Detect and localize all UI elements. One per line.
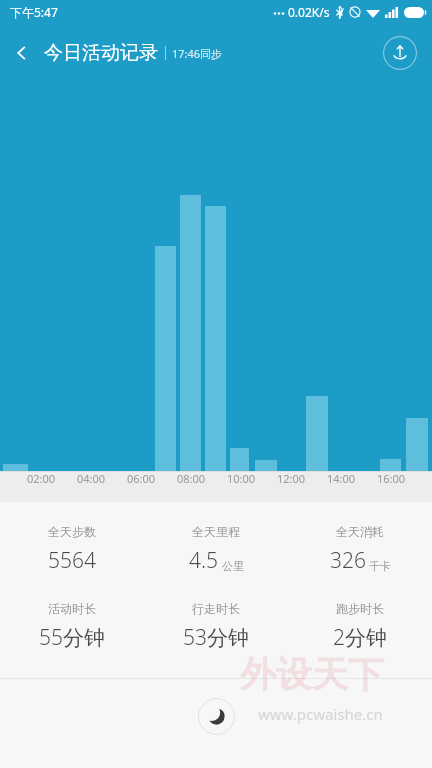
staticText: 16:00 <box>365 471 417 486</box>
staticText: 4.5 <box>189 546 219 575</box>
button[interactable]: 活动时长 <box>0 601 144 652</box>
staticText: 02:00 <box>15 471 67 486</box>
button[interactable]: 跑步时长 <box>288 601 432 652</box>
staticText: 今日活动记录 <box>44 41 158 65</box>
button[interactable]: Share <box>380 33 420 73</box>
staticText: 2分钟 <box>333 623 387 652</box>
button[interactable]: 全天里程 <box>144 524 288 575</box>
staticText: 12:00 <box>265 471 317 486</box>
staticText: 08:00 <box>165 471 217 486</box>
staticText: 55分钟 <box>39 623 105 652</box>
staticText: 公里 <box>222 559 244 573</box>
staticText: 04:00 <box>65 471 117 486</box>
staticText: 外设天下 <box>240 652 384 697</box>
staticText: 下午5:47 <box>10 4 58 20</box>
staticText: 10:00 <box>215 471 267 486</box>
staticText: 活动时长 <box>48 601 96 616</box>
staticText: 千卡 <box>369 559 391 573</box>
button[interactable]: 全天步数 <box>0 524 144 575</box>
button[interactable]: Back <box>0 31 44 75</box>
staticText: 全天里程 <box>192 524 240 539</box>
staticText: 53分钟 <box>183 623 249 652</box>
staticText: 0.02K/s <box>288 4 330 20</box>
staticText: www.pcwaishe.cn <box>258 704 383 724</box>
staticText: 06:00 <box>115 471 167 486</box>
staticText: 全天消耗 <box>336 524 384 539</box>
staticText: 全天步数 <box>48 524 96 539</box>
staticText: 14:00 <box>315 471 367 486</box>
button[interactable]: Sleep <box>198 698 235 735</box>
staticText: 326 <box>330 546 366 575</box>
button[interactable]: 全天消耗 <box>288 524 432 575</box>
staticText: 17:46同步 <box>172 46 223 61</box>
staticText: 跑步时长 <box>336 601 384 616</box>
staticText: 行走时长 <box>192 601 240 616</box>
button[interactable]: 行走时长 <box>144 601 288 652</box>
staticText: 5564 <box>48 546 96 575</box>
